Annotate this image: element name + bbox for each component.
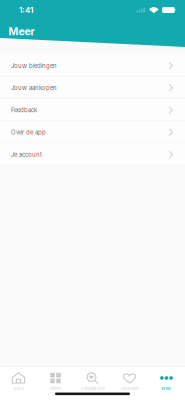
staticText: Meer [161, 386, 171, 391]
button[interactable]: Events [37, 370, 74, 392]
staticText: Events [50, 386, 61, 391]
staticText: Meer [8, 25, 34, 38]
staticText: Jouw biedingen [11, 62, 57, 69]
button[interactable]: Je account [0, 143, 185, 166]
staticText: Over de app [11, 129, 46, 136]
staticText: Jouw aankopen [11, 84, 57, 92]
staticText: 1:41 [19, 5, 33, 15]
button[interactable]: Zoekopdracht [74, 370, 111, 392]
button[interactable]: Over de app [0, 121, 185, 143]
button[interactable]: Jouw biedingen [0, 55, 185, 77]
staticText: Feedback [11, 106, 37, 114]
button[interactable]: Feedback [0, 99, 185, 121]
button[interactable]: Jouw aankopen [0, 77, 185, 99]
button[interactable]: Meer [0, 23, 39, 40]
staticText: Je account [11, 151, 42, 158]
staticText: Favorieten [120, 386, 138, 391]
button[interactable]: Favorieten [111, 370, 148, 392]
button[interactable]: Meer [148, 370, 185, 392]
button[interactable]: Home [0, 370, 37, 392]
staticText: Zoekopdracht [80, 386, 104, 391]
staticText: Home [13, 386, 24, 391]
